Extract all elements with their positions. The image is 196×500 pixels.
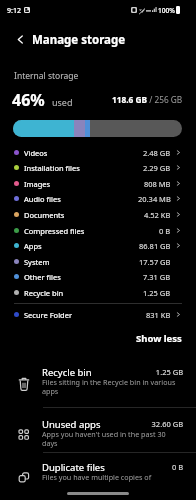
- button[interactable]: Other files: [0, 269, 196, 284]
- button[interactable]: Recycle bin: [0, 285, 196, 300]
- staticText: Show less: [136, 332, 182, 345]
- button[interactable]: Images: [0, 176, 196, 191]
- staticText: Documents: [24, 210, 65, 220]
- staticText: used: [52, 96, 73, 108]
- staticText: Recycle bin: [42, 366, 92, 379]
- staticText: Recycle bin: [24, 288, 64, 298]
- button[interactable]: Apps: [0, 238, 196, 253]
- staticText: Files you have multiple copies of: [42, 472, 181, 482]
- staticText: System: [24, 257, 50, 267]
- button[interactable]: Documents: [0, 207, 196, 222]
- staticText: Compressed files: [24, 226, 85, 236]
- staticText: 86.81 GB: [139, 241, 171, 251]
- staticText: Images: [24, 179, 51, 189]
- staticText: 0 B: [159, 226, 171, 236]
- staticText: Manage storage: [32, 32, 126, 48]
- button[interactable]: Installation files: [0, 160, 196, 175]
- button[interactable]: Unused apps: [0, 414, 196, 459]
- staticText: 20.34 MB: [138, 194, 171, 204]
- staticText: 1.25 GB: [0, 367, 183, 377]
- staticText: Audio files: [24, 194, 61, 204]
- staticText: 2.29 GB: [143, 163, 171, 173]
- staticText: Videos: [24, 148, 48, 158]
- button[interactable]: Audio files: [0, 191, 196, 206]
- staticText: 808 MB: [144, 179, 171, 189]
- staticText: 46%: [12, 89, 45, 111]
- staticText: Duplicate files: [42, 461, 105, 474]
- staticText: 9:12: [7, 6, 21, 16]
- staticText: Unused apps: [42, 418, 101, 431]
- button[interactable]: System: [0, 254, 196, 269]
- staticText: 4.52 KB: [144, 210, 171, 220]
- button[interactable]: Show less: [130, 326, 188, 351]
- staticText: 831 KB: [146, 310, 171, 320]
- staticText: / 256 GB: [147, 94, 183, 105]
- staticText: Other files: [24, 272, 61, 282]
- staticText: Apps you haven't used in the past 30 day…: [42, 429, 181, 448]
- button[interactable]: Compressed files: [0, 223, 196, 238]
- staticText: 7.31 GB: [143, 272, 171, 282]
- button[interactable]: Secure Folder: [0, 307, 196, 322]
- staticText: 17.57 GB: [139, 257, 171, 267]
- staticText: Installation files: [24, 163, 80, 173]
- button[interactable]: Duplicate files: [0, 457, 196, 500]
- staticText: Internal storage: [14, 70, 79, 82]
- staticText: Files sitting in the Recycle bin in vari…: [42, 377, 181, 396]
- button[interactable]: Videos: [0, 145, 196, 160]
- staticText: 0 B: [0, 462, 183, 472]
- staticText: 32.60 GB: [0, 419, 183, 429]
- button[interactable]: Recycle bin: [0, 362, 196, 407]
- staticText: Apps: [24, 241, 42, 251]
- staticText: Secure Folder: [24, 310, 73, 320]
- button[interactable]: Back: [6, 25, 34, 53]
- staticText: 1.25 GB: [143, 288, 171, 298]
- staticText: 118.6 GB: [112, 94, 147, 105]
- staticText: 100%: [158, 6, 175, 15]
- staticText: 2.48 GB: [143, 148, 171, 158]
